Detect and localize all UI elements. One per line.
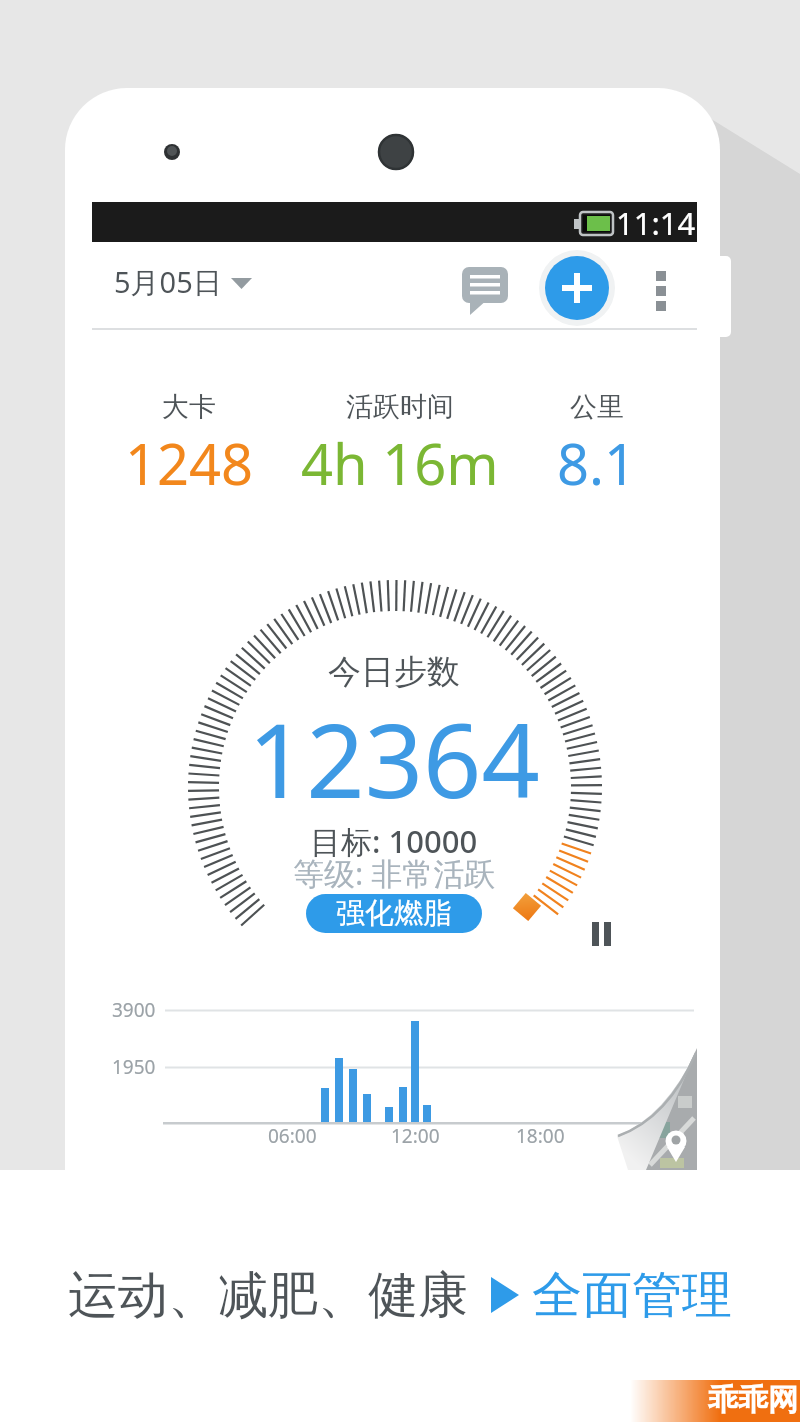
staticText: 1248	[125, 425, 254, 501]
staticText: 公里	[570, 390, 624, 424]
staticText: 乖乖网	[708, 1381, 798, 1419]
button[interactable]	[640, 258, 682, 320]
staticText: 3900	[112, 997, 156, 1023]
button[interactable]: 强化燃脂	[306, 894, 482, 933]
button[interactable]	[545, 256, 609, 320]
staticText: 4h 16m	[301, 425, 499, 501]
button[interactable]	[455, 260, 515, 318]
staticText: 活跃时间	[346, 390, 454, 424]
staticText: 18:00	[516, 1123, 565, 1149]
staticText: 运动、减肥、健康	[68, 1264, 468, 1327]
button[interactable]	[100, 255, 265, 319]
staticText: 全面管理	[532, 1264, 732, 1327]
staticText: 06:00	[268, 1123, 317, 1149]
staticText: 11:14	[616, 202, 696, 244]
staticText: 8.1	[557, 425, 637, 501]
button[interactable]	[584, 914, 620, 954]
staticText: 强化燃脂	[336, 895, 452, 932]
staticText: 12:00	[391, 1123, 440, 1149]
staticText: 等级: 非常活跃	[293, 852, 496, 894]
staticText: 目标: 10000	[310, 820, 478, 862]
staticText: 1950	[112, 1054, 156, 1080]
staticText: 大卡	[162, 390, 216, 424]
staticText: 今日步数	[328, 651, 460, 693]
staticText: 5月05日	[114, 262, 222, 302]
staticText: 12364	[248, 689, 540, 828]
